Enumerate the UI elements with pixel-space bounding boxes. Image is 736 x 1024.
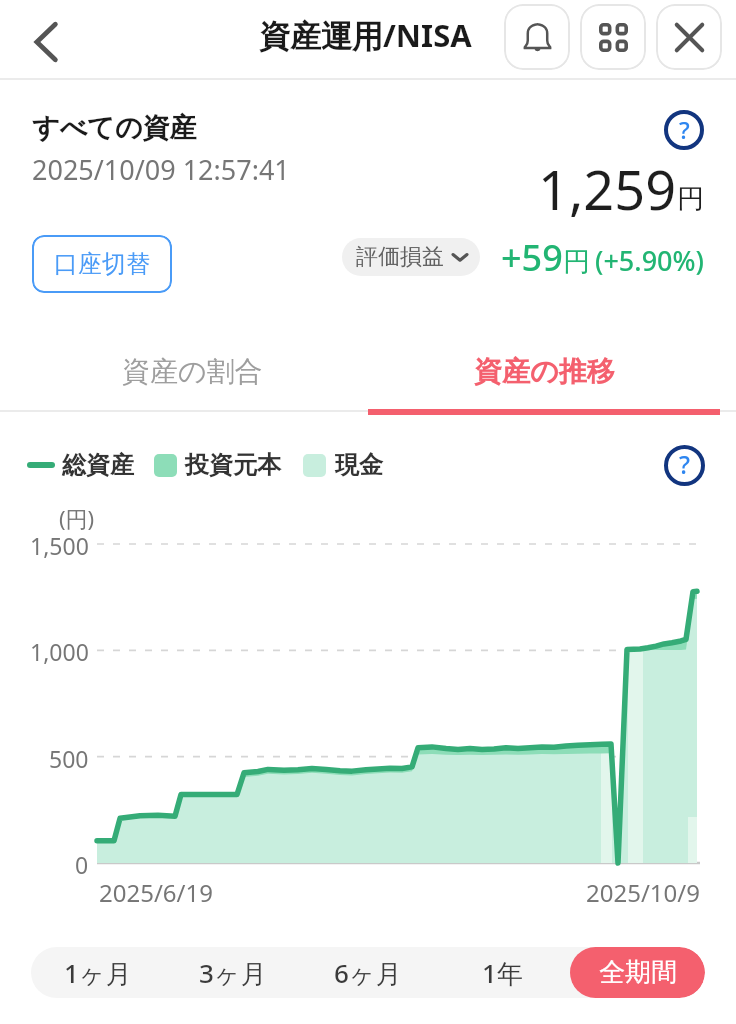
staticText: (+5.90%) [595,242,704,279]
staticText: 6ヶ月 [334,955,402,991]
button[interactable]: 全期間 [570,947,705,998]
staticText: 1,000 [30,636,89,667]
staticText: 口座切替 [54,249,150,279]
staticText: 1ヶ月 [64,955,132,991]
button[interactable]: Help about total assets [656,102,712,158]
staticText: +59 [501,233,563,282]
staticText: 円 [563,245,590,279]
button[interactable]: 3ヶ月 [165,947,300,998]
button[interactable]: 資産の割合 [16,332,368,410]
staticText: 評価損益 [356,243,444,271]
staticText: 1,500 [30,530,89,561]
button[interactable]: Apps [580,4,646,70]
staticText: 2025/6/19 [99,876,213,909]
button[interactable]: 1年 [435,947,570,998]
staticText: すべての資産 [32,111,197,145]
button[interactable]: 資産の推移 [368,332,720,410]
staticText: 円 [677,182,704,216]
staticText: 3ヶ月 [199,955,267,991]
button[interactable]: Close [656,4,722,70]
staticText: 1,259 [538,152,677,226]
staticText: 500 [49,743,89,774]
staticText: ? [679,113,690,146]
button[interactable]: Help about chart [657,438,712,493]
staticText: ? [679,448,690,482]
staticText: 2025/10/09 12:57:41 [32,151,290,188]
button[interactable]: 6ヶ月 [300,947,435,998]
staticText: 2025/10/9 [586,876,700,909]
button[interactable]: 口座切替 [32,235,172,293]
staticText: 投資元本 [185,450,281,480]
button[interactable]: 評価損益 [342,238,480,276]
button[interactable]: Notifications [504,4,570,70]
staticText: 総資産 [62,450,134,480]
staticText: 1年 [482,955,523,991]
staticText: 0 [75,849,89,880]
staticText: (円) [59,503,95,533]
staticText: 資産の推移 [474,354,615,389]
staticText: 現金 [335,450,383,480]
button[interactable]: 1ヶ月 [31,947,165,998]
button[interactable]: Back [12,9,78,75]
staticText: 全期間 [599,956,677,989]
staticText: 資産の割合 [122,354,263,389]
staticText: 資産運用/NISA [259,14,472,56]
